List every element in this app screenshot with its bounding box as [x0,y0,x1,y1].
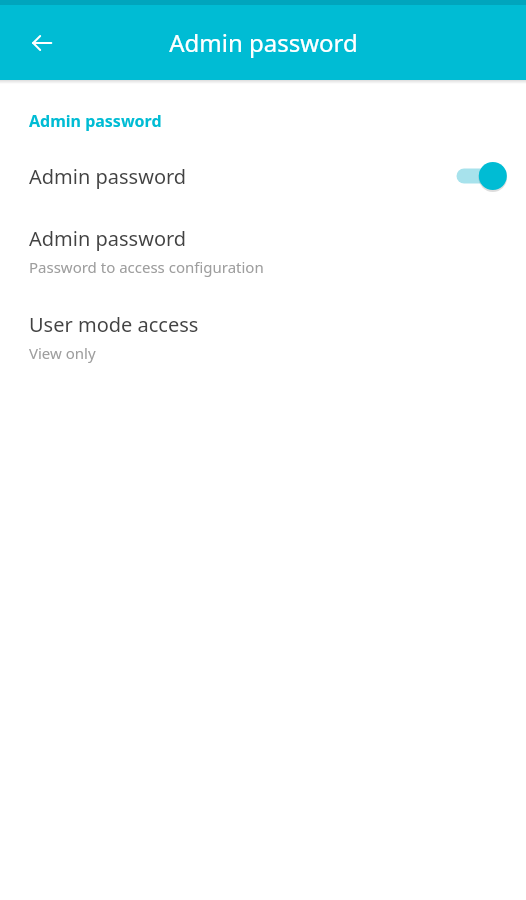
button[interactable]: User mode access [0,294,526,380]
staticText: Admin password [29,110,162,132]
staticText: Admin password [29,163,187,190]
staticText: User mode access [29,311,199,338]
button[interactable]: Admin password [0,208,526,294]
button[interactable]: Back [18,19,66,67]
button[interactable]: Admin password [0,144,526,208]
staticText: Admin password [29,225,187,252]
staticText: View only [29,343,96,363]
staticText: Password to access configuration [29,257,264,277]
staticText: Admin password [169,26,358,59]
button[interactable]: Toggle admin password [448,153,510,199]
